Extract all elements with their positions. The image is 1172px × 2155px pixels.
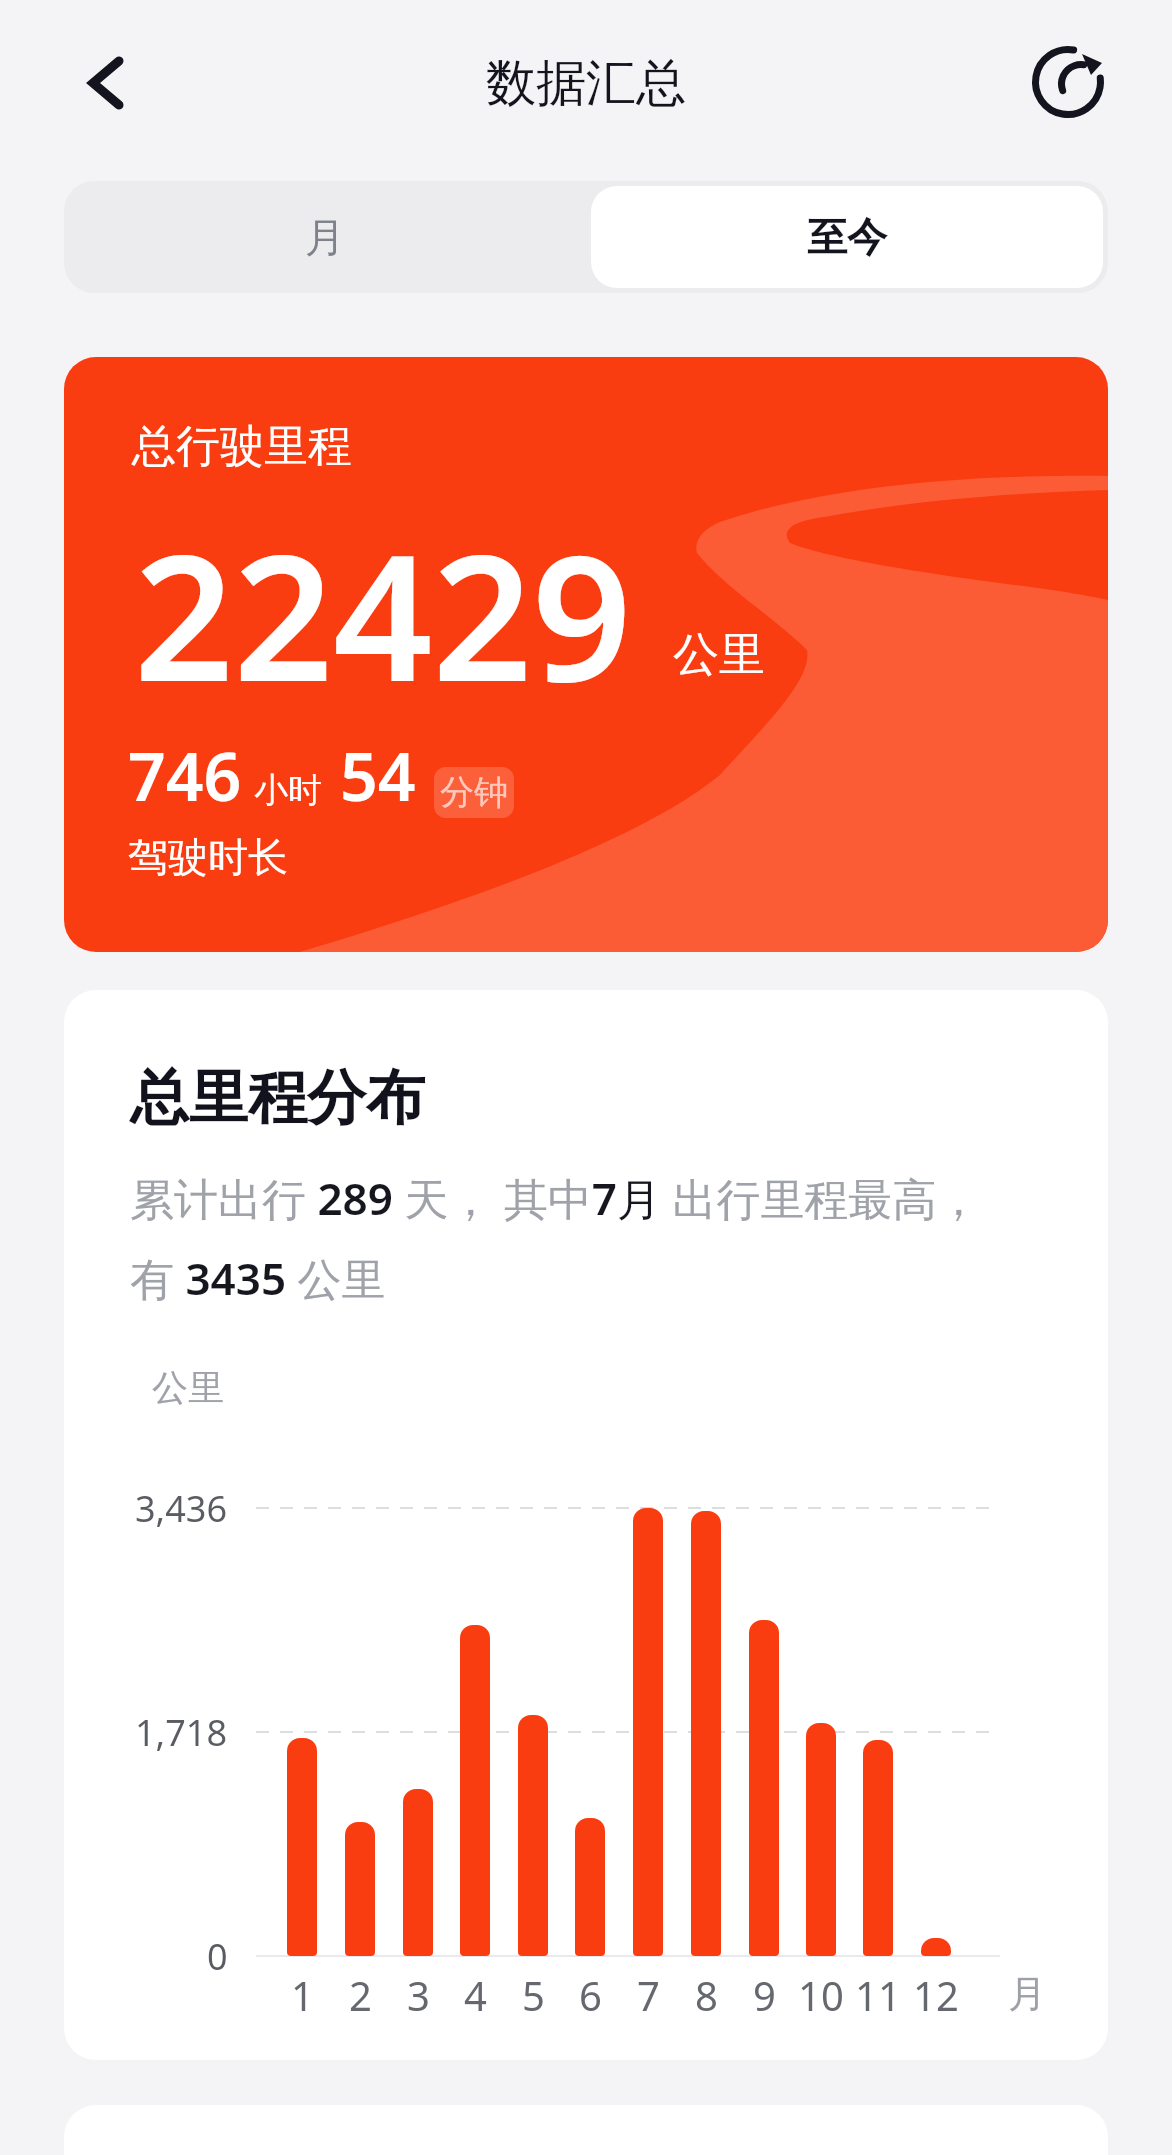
staticText: 至今 bbox=[807, 212, 887, 262]
button[interactable]: 月 bbox=[64, 181, 586, 293]
staticText: 月 bbox=[1008, 1970, 1046, 2018]
button[interactable] bbox=[70, 47, 142, 119]
staticText: 3,436 bbox=[135, 1484, 228, 1533]
staticText: 5 bbox=[522, 1968, 545, 2022]
staticText: 1,718 bbox=[135, 1708, 228, 1757]
staticText: 总行驶里程 bbox=[132, 419, 352, 474]
staticText: 54 bbox=[340, 730, 416, 820]
staticText: 2 bbox=[349, 1968, 372, 2022]
staticText: 分钟 bbox=[440, 771, 508, 814]
staticText: 驾驶时长 bbox=[128, 832, 288, 882]
staticText: 总里程分布 bbox=[130, 1061, 425, 1135]
staticText: 数据汇总 bbox=[486, 52, 686, 115]
staticText: 8 bbox=[695, 1968, 718, 2022]
staticText: 746 bbox=[128, 730, 242, 820]
button[interactable] bbox=[1028, 42, 1108, 122]
staticText: 0 bbox=[207, 1932, 228, 1981]
staticText: 11 bbox=[855, 1968, 901, 2022]
staticText: 公里 bbox=[152, 1365, 224, 1410]
staticText: 公里 bbox=[673, 626, 765, 684]
staticText: 6 bbox=[579, 1968, 602, 2022]
staticText: 9 bbox=[753, 1968, 776, 2022]
button[interactable]: 至今 bbox=[591, 186, 1103, 288]
staticText: 1 bbox=[291, 1968, 314, 2022]
staticText: 累计出行 289 天， 其中7月 出行里程最高， 有 3435 公里 bbox=[130, 1168, 981, 1308]
staticText: 10 bbox=[798, 1968, 844, 2022]
staticText: 12 bbox=[913, 1968, 959, 2022]
staticText: 3 bbox=[407, 1968, 430, 2022]
staticText: 7 bbox=[637, 1968, 660, 2022]
staticText: 4 bbox=[464, 1968, 487, 2022]
staticText: 月 bbox=[305, 212, 345, 262]
staticText: 小时 bbox=[254, 769, 322, 812]
staticText: 22429 bbox=[134, 495, 632, 732]
